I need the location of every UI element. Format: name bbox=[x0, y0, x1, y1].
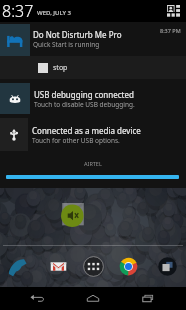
staticText: Quick Start is running bbox=[33, 40, 100, 49]
staticText: AIRTEL bbox=[84, 160, 102, 167]
button[interactable]: USB debugging connected bbox=[0, 83, 186, 114]
button[interactable]: Do Not Disrturb Me Pro bbox=[0, 24, 186, 79]
button[interactable]: Phone bbox=[6, 256, 27, 277]
staticText: WED, JULY 3 bbox=[37, 9, 72, 17]
button[interactable]: Close notification shade bbox=[6, 175, 179, 179]
button[interactable]: Connected as a media device bbox=[0, 118, 186, 151]
button[interactable]: stop bbox=[0, 56, 186, 79]
button[interactable]: Browser bbox=[157, 256, 178, 277]
button[interactable]: Recents bbox=[135, 287, 161, 310]
staticText: Connected as a media device bbox=[32, 125, 141, 136]
staticText: 8:37 PM bbox=[160, 27, 181, 34]
staticText: 8:37 bbox=[2, 0, 34, 22]
button[interactable]: Apps bbox=[83, 256, 104, 277]
button[interactable]: Home bbox=[80, 287, 106, 310]
button[interactable]: Quick settings bbox=[167, 5, 180, 18]
staticText: stop bbox=[53, 63, 68, 73]
staticText: Do Not Disrturb Me Pro bbox=[33, 29, 122, 40]
staticText: Touch for other USB options. bbox=[32, 136, 120, 145]
staticText: Touch to disable USB debugging. bbox=[34, 100, 135, 109]
button[interactable]: Back bbox=[25, 287, 51, 310]
button[interactable]: Sound profile bbox=[61, 203, 85, 227]
button[interactable]: Chrome bbox=[118, 256, 139, 277]
staticText: USB debugging connected bbox=[34, 89, 134, 100]
button[interactable]: Gmail bbox=[48, 256, 69, 277]
